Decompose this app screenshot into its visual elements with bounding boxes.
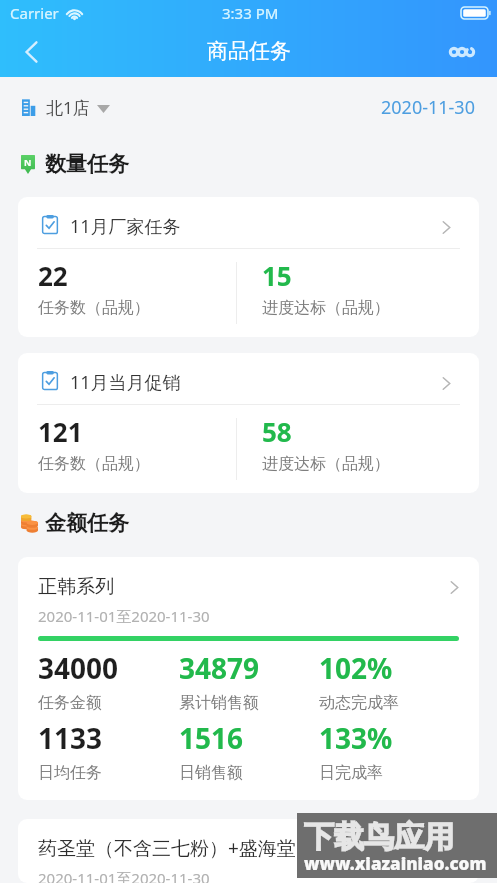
staticText: 11月厂家任务 bbox=[70, 214, 181, 239]
button[interactable]: 药圣堂（不含三七粉）+盛海堂 bbox=[18, 819, 479, 883]
staticText: 3:33 PM bbox=[222, 3, 279, 23]
staticText: 日均任务 bbox=[38, 763, 102, 783]
staticText: www.xiazainiao.com bbox=[304, 852, 487, 875]
staticText: 日销售额 bbox=[179, 763, 243, 783]
staticText: 任务数（品规） bbox=[38, 298, 150, 318]
staticText: 数量任务 bbox=[45, 151, 129, 177]
staticText: 北1店 bbox=[46, 96, 90, 119]
staticText: 正韩系列 bbox=[38, 575, 114, 599]
staticText: 1516 bbox=[179, 719, 244, 757]
staticText: 下载鸟应用 bbox=[304, 818, 454, 856]
staticText: 2020-11-01至2020-11-30 bbox=[38, 606, 210, 626]
staticText: Carrier bbox=[10, 3, 59, 23]
button[interactable]: 11月当月促销 bbox=[18, 353, 479, 493]
staticText: 2020-11-30 bbox=[381, 95, 475, 118]
staticText: 133% bbox=[319, 719, 393, 757]
staticText: 任务数（品规） bbox=[38, 454, 150, 474]
button[interactable]: 正韩系列 bbox=[18, 557, 479, 800]
staticText: 任务金额 bbox=[38, 693, 102, 713]
staticText: 进度达标（品规） bbox=[262, 454, 390, 474]
staticText: 11月当月促销 bbox=[70, 370, 181, 395]
staticText: 商品任务 bbox=[207, 38, 291, 64]
staticText: 34879 bbox=[179, 649, 260, 687]
staticText: 1133 bbox=[38, 719, 103, 757]
staticText: 动态完成率 bbox=[319, 693, 399, 713]
button[interactable]: Back bbox=[8, 30, 54, 74]
staticText: 日完成率 bbox=[319, 763, 383, 783]
staticText: N bbox=[24, 156, 32, 168]
button[interactable]: 11月厂家任务 bbox=[18, 197, 479, 337]
staticText: 102% bbox=[319, 649, 393, 687]
staticText: 2020-11-01至2020-11-30 bbox=[38, 868, 210, 883]
button[interactable]: 2020-11-30 bbox=[369, 77, 497, 124]
button[interactable]: More options bbox=[439, 30, 485, 74]
staticText: 58 bbox=[262, 414, 292, 449]
staticText: 34000 bbox=[38, 649, 119, 687]
staticText: 15 bbox=[262, 258, 292, 293]
staticText: 121 bbox=[38, 414, 83, 449]
staticText: 累计销售额 bbox=[179, 693, 259, 713]
staticText: 进度达标（品规） bbox=[262, 298, 390, 318]
staticText: 药圣堂（不含三七粉）+盛海堂 bbox=[38, 835, 296, 861]
staticText: 22 bbox=[38, 258, 68, 293]
staticText: 金额任务 bbox=[45, 510, 129, 536]
button[interactable]: 北1店 bbox=[0, 79, 118, 123]
